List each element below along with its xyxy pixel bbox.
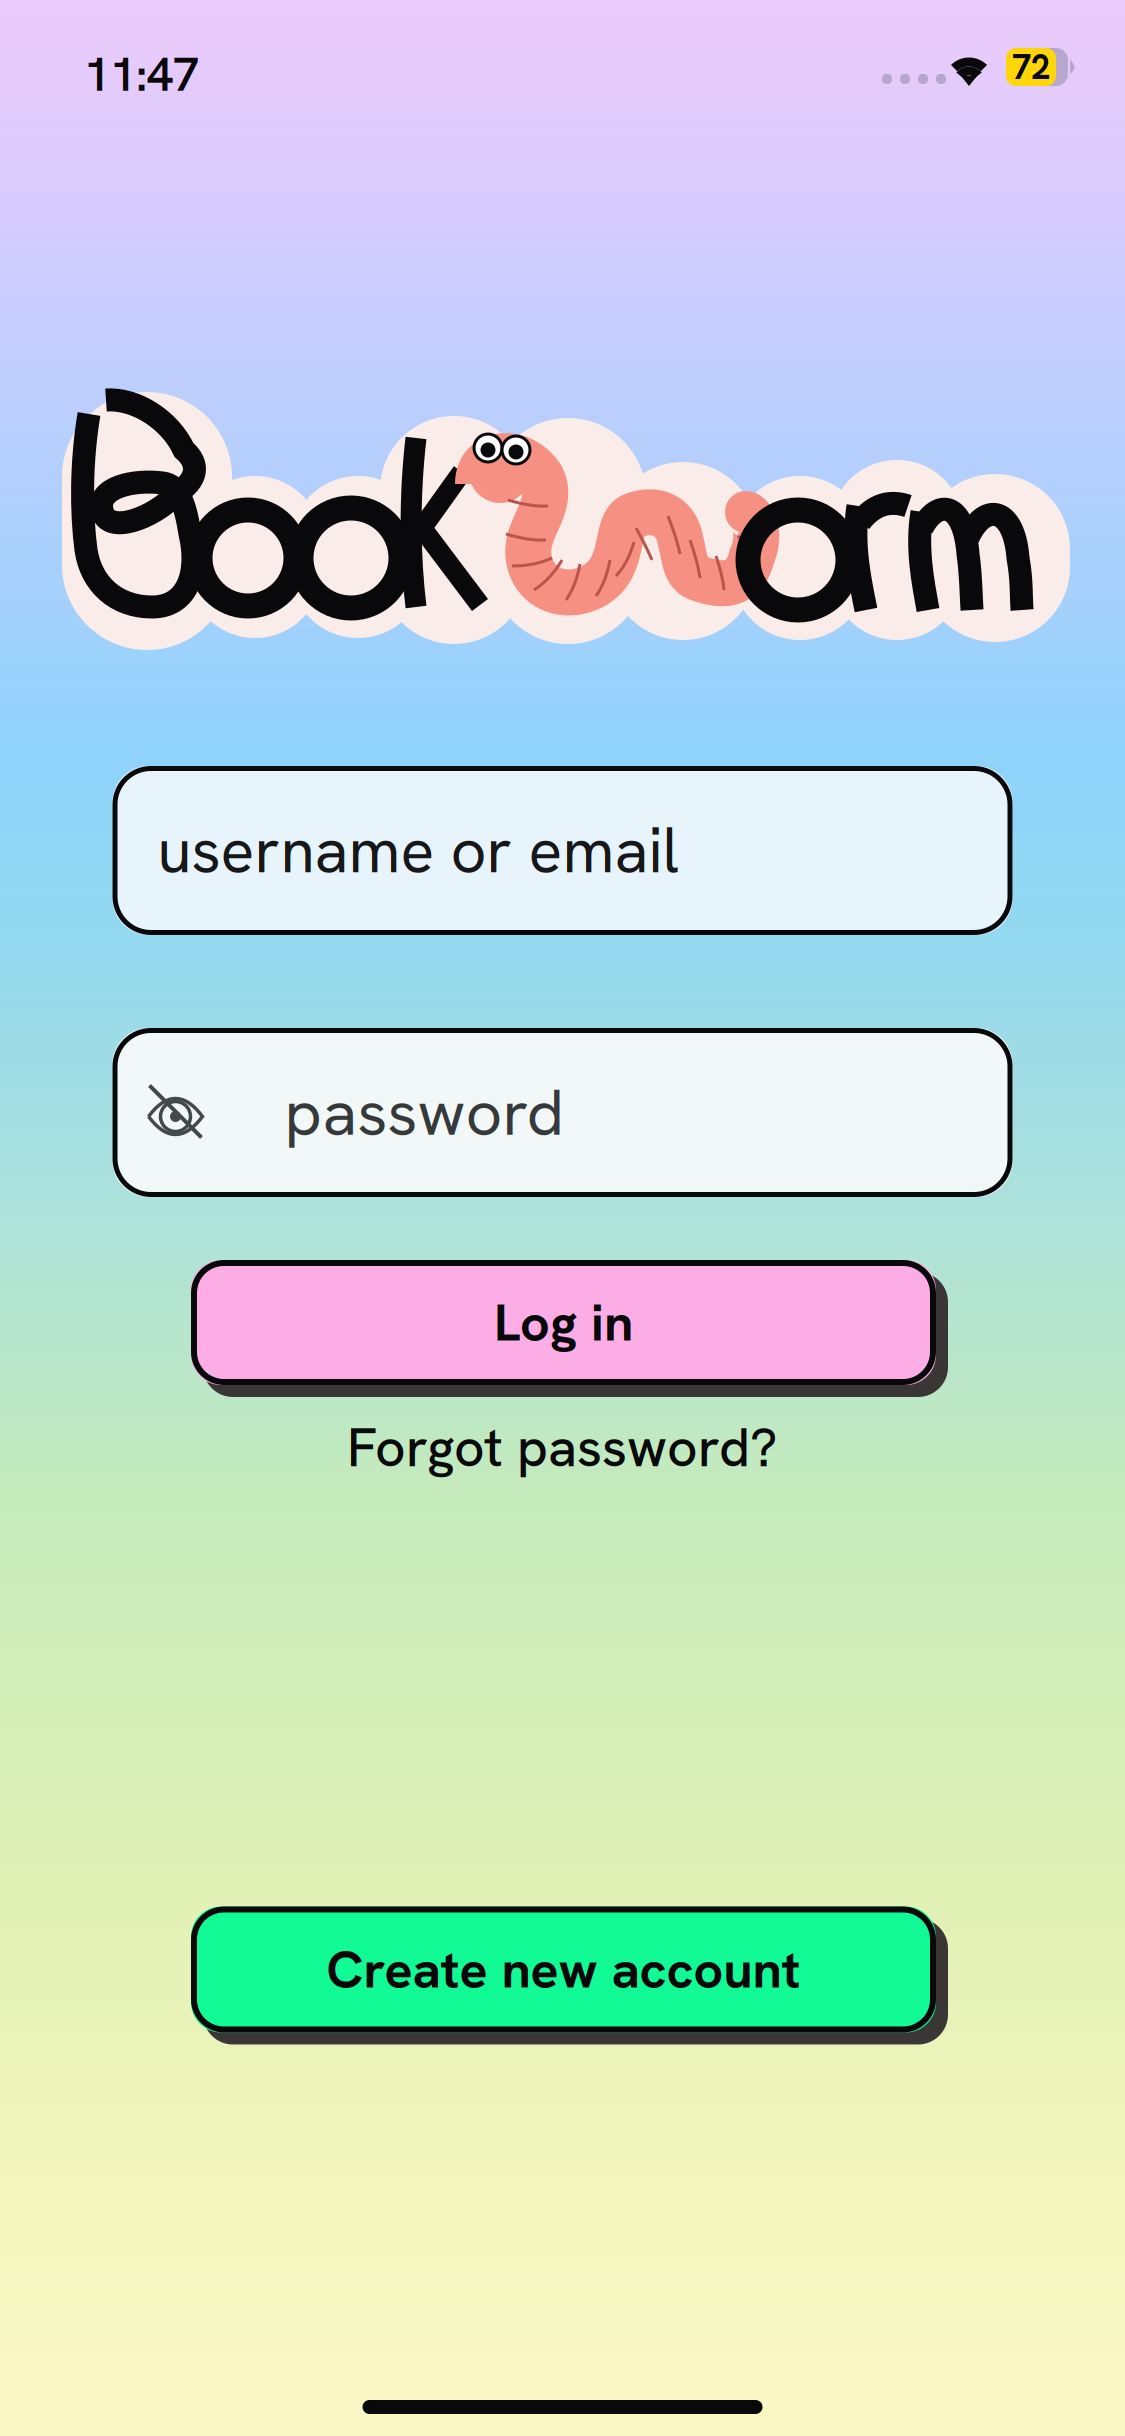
- button[interactable]: Log in: [177, 1260, 948, 1397]
- staticText: 11:47: [84, 44, 199, 105]
- button[interactable]: Forgot password?: [335, 1401, 790, 1494]
- staticText: 72: [1012, 44, 1050, 90]
- staticText: Forgot password?: [347, 1413, 778, 1482]
- staticText: Create new account: [326, 1936, 800, 2003]
- staticText: username or email: [157, 810, 679, 891]
- button[interactable]: Create new account: [177, 1906, 948, 2044]
- staticText: Log in: [494, 1289, 633, 1356]
- staticText: password: [284, 1071, 564, 1154]
